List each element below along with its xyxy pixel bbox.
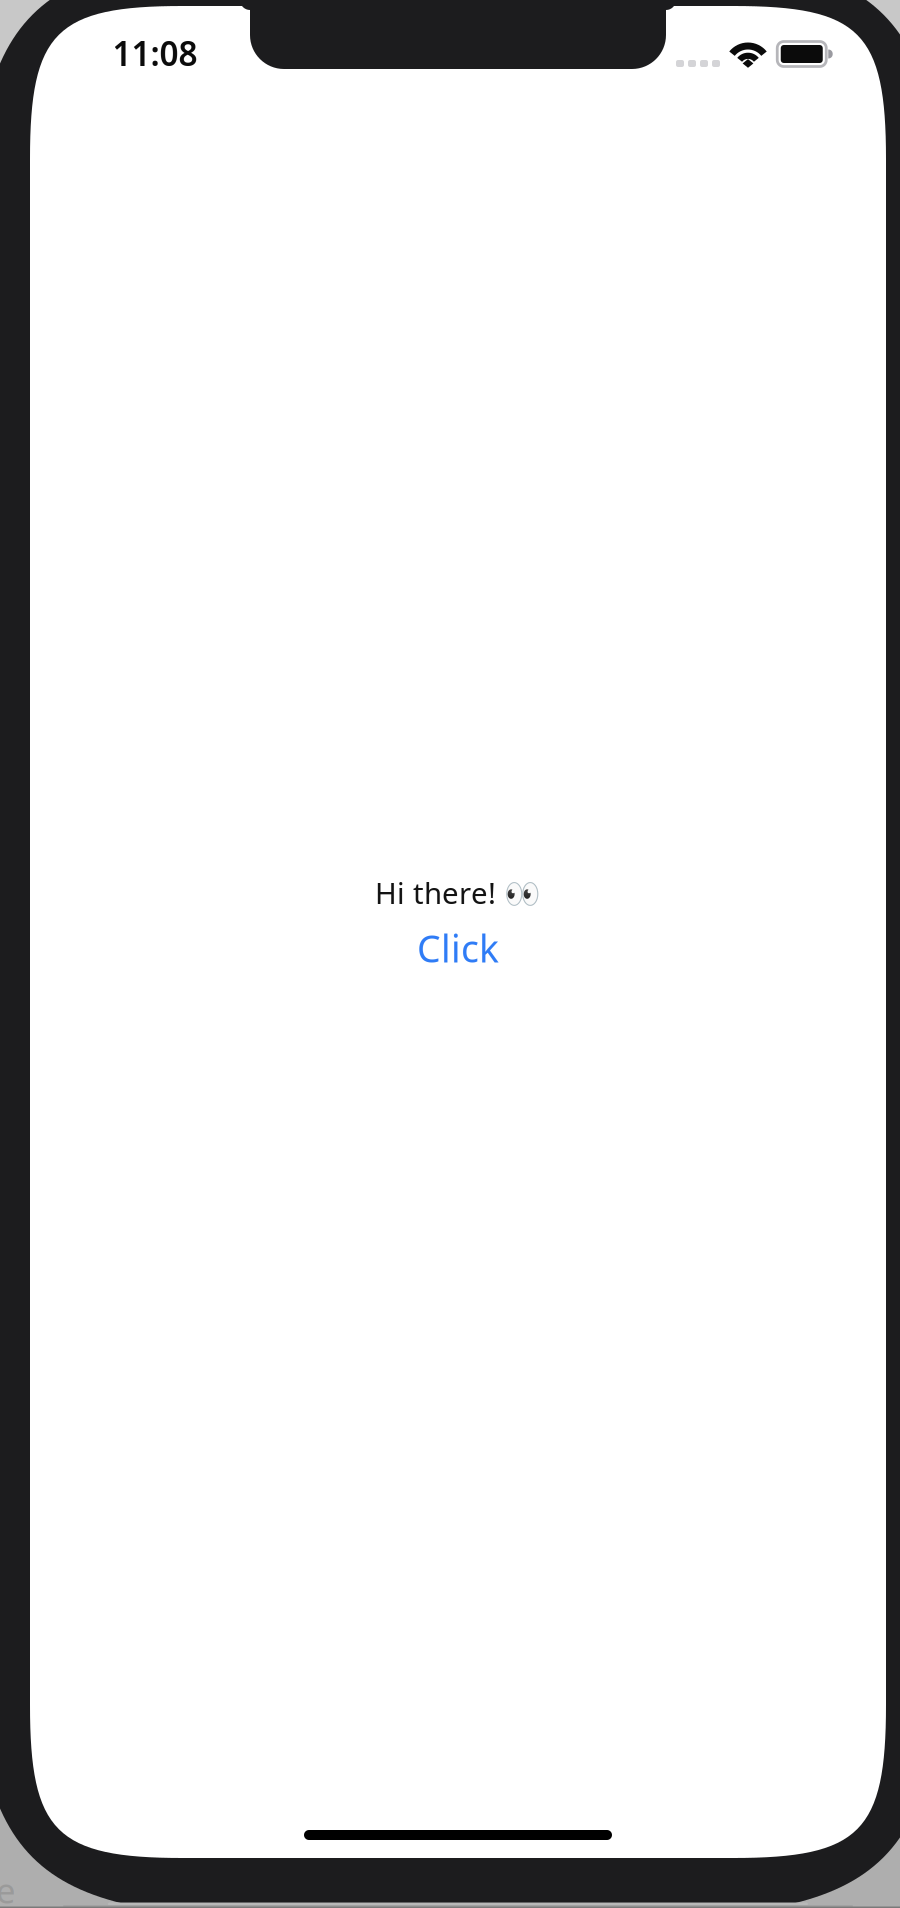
button[interactable]: Click — [417, 923, 499, 973]
staticText: e — [0, 1867, 16, 1908]
staticText: Click — [417, 923, 499, 973]
staticText: 11:08 — [112, 31, 197, 75]
staticText: Hi there! 👀 — [375, 873, 541, 912]
